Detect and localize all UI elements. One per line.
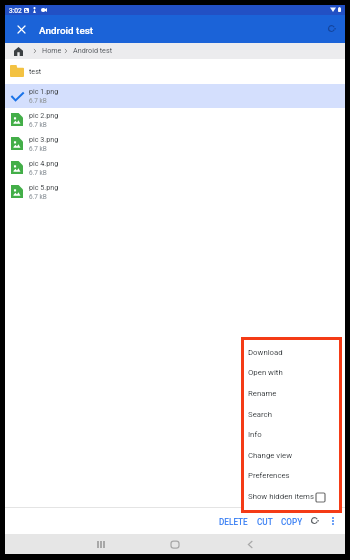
button[interactable]: Refresh (306, 512, 323, 529)
button[interactable]: Home (12, 45, 24, 57)
staticText: pic 1.png (29, 87, 59, 95)
button[interactable]: pic 1.png (5, 84, 345, 108)
button[interactable]: Rename (241, 382, 342, 403)
staticText: pic 5.png (29, 183, 59, 191)
button[interactable]: Android test (73, 46, 112, 54)
staticText: 6.7 kB (29, 169, 47, 177)
button[interactable]: test (5, 59, 345, 84)
button[interactable]: More options (324, 512, 341, 529)
button[interactable]: COPY (281, 517, 303, 527)
staticText: 6.7 kB (29, 193, 47, 201)
button[interactable]: Close (12, 20, 30, 38)
staticText: 6.7 kB (29, 145, 47, 153)
staticText: pic 3.png (29, 135, 59, 143)
staticText: 6.7 kB (29, 97, 47, 105)
staticText: Android test (39, 25, 94, 37)
staticText: Download (248, 348, 283, 357)
button[interactable]: Search (241, 403, 342, 424)
button[interactable]: Refresh (323, 20, 340, 37)
button[interactable]: Info (241, 423, 342, 444)
button[interactable]: CUT (257, 517, 273, 527)
button[interactable]: pic 2.png (5, 108, 345, 132)
button[interactable]: Back (239, 534, 261, 554)
button[interactable]: pic 4.png (5, 156, 345, 180)
staticText: Rename (248, 389, 277, 398)
button[interactable]: Open with (241, 361, 342, 382)
button[interactable]: Change view (241, 444, 342, 465)
button[interactable]: Preferences (241, 464, 342, 485)
staticText: test (29, 67, 42, 75)
button[interactable]: DELETE (219, 517, 248, 527)
button[interactable]: Home (164, 534, 186, 554)
staticText: 6.7 kB (29, 121, 47, 129)
button[interactable]: pic 3.png (5, 132, 345, 156)
staticText: Search (248, 410, 272, 419)
button[interactable]: Download (241, 341, 342, 362)
staticText: Preferences (248, 471, 290, 480)
button[interactable]: pic 5.png (5, 180, 345, 204)
staticText: 3:02 (9, 7, 22, 15)
button[interactable]: Show hidden items (241, 485, 342, 506)
staticText: pic 2.png (29, 111, 59, 119)
staticText: Change view (248, 451, 293, 460)
button[interactable]: Home (42, 46, 62, 54)
staticText: Open with (248, 368, 283, 377)
button[interactable]: Recents (90, 534, 112, 554)
staticText: Show hidden items (248, 492, 314, 501)
staticText: Info (248, 430, 262, 439)
staticText: pic 4.png (29, 159, 59, 167)
